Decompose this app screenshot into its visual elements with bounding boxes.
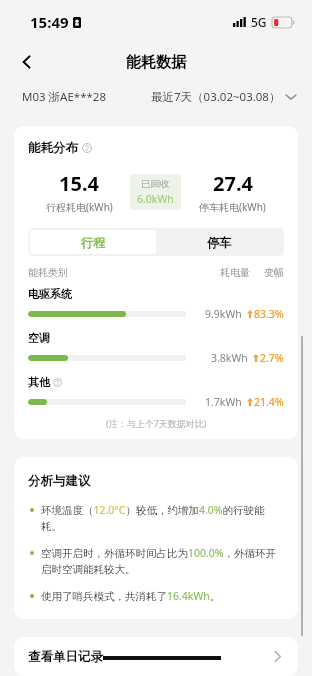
staticText: 15.4 [59,170,99,197]
staticText: 15:49 [30,12,69,32]
staticText: (注：与上个7天数据对比) [106,417,207,429]
staticText: 电驱系统 [28,287,72,301]
staticText: 行程耗电(kWh) [46,200,113,214]
button[interactable]: 最近7天（03.02~03.08） [151,89,296,105]
button[interactable]: 行程 [30,230,156,254]
staticText: 3.8kWh [211,351,248,365]
staticText: 21.4% [254,395,284,409]
staticText: 27.4 [213,170,253,197]
staticText: M03 浙AE***28 [22,89,106,105]
staticText: 2.7% [260,351,284,365]
staticText: 变幅 [264,266,284,279]
staticText: 耗电量 [220,266,250,279]
staticText: 查看单日记录 [28,649,103,665]
staticText: 行程 [81,235,105,250]
button[interactable]: 查看单日记录 [14,637,298,676]
staticText: 已回收 [141,178,170,190]
button[interactable]: M03 浙AE***28 [22,89,106,105]
staticText: 停车耗电(kWh) [199,200,266,214]
staticText: 1.7kWh [205,395,242,409]
staticText: 9.9kWh [205,307,242,321]
button[interactable]: 停车 [156,230,282,254]
button[interactable]: Back [10,45,44,79]
staticText: 6.0kWh [137,192,174,206]
staticText: 能耗数据 [126,53,186,72]
staticText: 其他 [28,375,50,389]
staticText: 使用了哨兵模式，共消耗了16.4kWh。 [41,589,221,603]
staticText: 环境温度（12.0°C）较低，约增加4.0%的行驶能耗。 [41,503,284,533]
staticText: 能耗类别 [28,266,68,279]
staticText: 分析与建议 [28,473,91,489]
staticText: 空调 [28,331,50,345]
staticText: 最近7天（03.02~03.08） [151,89,281,105]
staticText: 空调开启时，外循环时间占比为100.0%，外循环开启时空调能耗较大。 [41,546,284,576]
staticText: 停车 [207,235,231,250]
staticText: 能耗分布 [28,140,78,156]
staticText: 83.3% [254,307,284,321]
staticText: 5G [251,14,267,30]
